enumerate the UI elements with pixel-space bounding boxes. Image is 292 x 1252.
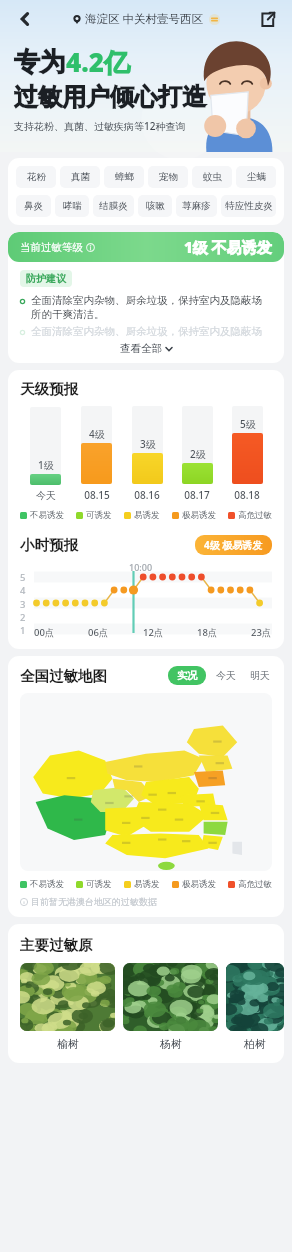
staticText: 荨麻疹: [182, 200, 211, 212]
staticText: 08.15: [84, 488, 110, 502]
button[interactable]: 哮喘: [55, 195, 89, 217]
staticText: 5: [20, 571, 26, 584]
staticText: 真菌: [71, 171, 90, 183]
staticText: 花粉: [27, 171, 46, 183]
staticText: 易诱发: [134, 510, 160, 521]
staticText: 可诱发: [86, 510, 112, 521]
staticText: 08.16: [134, 488, 160, 502]
staticText: 尘螨: [247, 171, 266, 183]
staticText: 23点: [251, 626, 272, 639]
staticText: 5级: [240, 417, 256, 431]
staticText: 今天: [36, 489, 56, 502]
staticText: 蚊虫: [203, 171, 222, 183]
staticText: 榆树: [57, 1037, 79, 1051]
staticText: 不易诱发: [30, 510, 64, 521]
staticText: 1: [20, 624, 26, 637]
staticText: 极易诱发: [182, 510, 216, 521]
staticText: 4.2亿: [66, 44, 130, 80]
button[interactable]: 实况: [168, 666, 206, 685]
staticText: 实况: [177, 669, 197, 682]
staticText: 可诱发: [86, 879, 112, 890]
button[interactable]: Share: [254, 6, 280, 32]
staticText: 目前暂无港澳台地区的过敏数据: [31, 896, 157, 907]
button[interactable]: 海淀区 中关村壹号西区: [72, 11, 203, 27]
staticText: 结膜炎: [99, 200, 128, 212]
staticText: 宠物: [159, 171, 178, 183]
button[interactable]: [20, 963, 115, 1031]
button[interactable]: [123, 963, 218, 1031]
staticText: 高危过敏: [238, 510, 272, 521]
staticText: 当前过敏等级: [20, 241, 83, 254]
staticText: 08.18: [234, 488, 260, 502]
staticText: 全面清除室内杂物、厨余垃圾，保持室内及隐蔽场: [31, 325, 272, 338]
staticText: 08.17: [184, 488, 210, 502]
staticText: 支持花粉、真菌、过敏疾病等12种查询: [14, 119, 186, 133]
staticText: 哮喘: [63, 200, 82, 212]
staticText: 3: [20, 598, 26, 611]
staticText: 查看全部: [120, 342, 162, 355]
staticText: 特应性皮炎: [225, 200, 273, 212]
button[interactable]: 特应性皮炎: [221, 195, 276, 217]
staticText: 今天: [216, 669, 236, 682]
button[interactable]: 尘螨: [236, 166, 276, 188]
button[interactable]: 花粉: [16, 166, 56, 188]
button[interactable]: Back: [12, 6, 38, 32]
staticText: 不易诱发: [30, 879, 64, 890]
staticText: 海淀区 中关村壹号西区: [85, 11, 203, 27]
button[interactable]: 真菌: [60, 166, 100, 188]
staticText: 柏树: [244, 1037, 266, 1051]
staticText: 明天: [250, 669, 270, 682]
staticText: 1级 不易诱发: [184, 237, 272, 257]
staticText: 00点: [34, 626, 55, 639]
button[interactable]: 宠物: [148, 166, 188, 188]
button[interactable]: 鼻炎: [16, 195, 51, 217]
staticText: 18点: [197, 626, 218, 639]
staticText: 天级预报: [20, 380, 78, 398]
staticText: 全国过敏地图: [20, 667, 107, 685]
staticText: 蟑螂: [115, 171, 134, 183]
staticText: 4: [20, 584, 26, 597]
staticText: 易诱发: [134, 879, 160, 890]
staticText: 极易诱发: [182, 879, 216, 890]
button[interactable]: 结膜炎: [93, 195, 134, 217]
button[interactable]: 查看全部: [20, 342, 272, 355]
button[interactable]: 蟑螂: [104, 166, 144, 188]
staticText: 咳嗽: [146, 200, 165, 212]
staticText: 3级: [140, 437, 156, 451]
staticText: 2: [20, 611, 26, 624]
staticText: 鼻炎: [24, 200, 43, 212]
staticText: 专为: [14, 46, 66, 79]
button[interactable]: [226, 963, 284, 1031]
button[interactable]: 蚊虫: [192, 166, 232, 188]
staticText: 主要过敏原: [20, 936, 93, 954]
button[interactable]: 荨麻疹: [176, 195, 217, 217]
staticText: 杨树: [160, 1037, 182, 1051]
button[interactable]: 明天: [248, 666, 272, 685]
staticText: 过敏用户倾心打造: [14, 82, 206, 112]
staticText: 10:00: [129, 561, 153, 573]
staticText: 小时预报: [20, 536, 78, 554]
button[interactable]: 今天: [214, 666, 238, 685]
staticText: 2级: [190, 447, 206, 461]
staticText: 高危过敏: [238, 879, 272, 890]
button[interactable]: 咳嗽: [138, 195, 172, 217]
staticText: 4级: [89, 427, 105, 441]
staticText: 4级 极易诱发: [204, 538, 263, 552]
staticText: 全面清除室内杂物、厨余垃圾，保持室内及隐蔽场所的干爽清洁。: [31, 294, 272, 321]
staticText: 06点: [88, 626, 109, 639]
staticText: 1级: [38, 458, 54, 472]
staticText: 12点: [143, 626, 164, 639]
staticText: 防护建议: [26, 272, 66, 285]
